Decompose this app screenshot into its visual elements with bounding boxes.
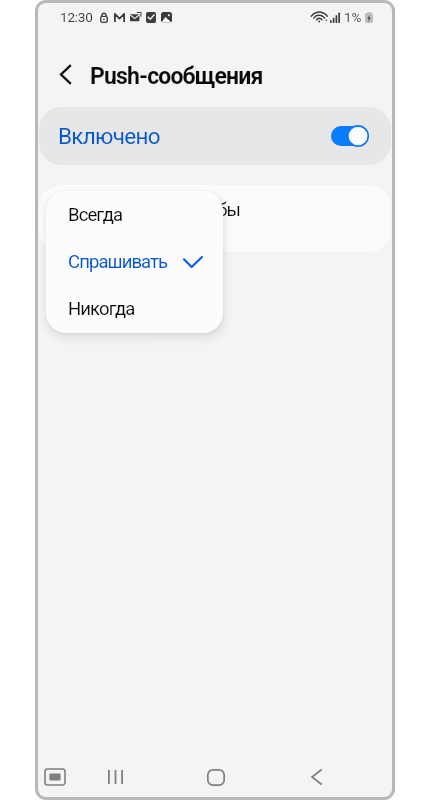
staticText: Push-сообщения <box>90 63 263 90</box>
button[interactable]: Запрашивать, чтобы <box>39 185 391 252</box>
button[interactable]: Никогда <box>46 285 223 332</box>
staticText: Запрашивать, чтобы <box>77 199 241 221</box>
staticText: Никогда <box>68 298 135 320</box>
staticText: 12:30 <box>60 9 93 25</box>
staticText: Спрашивать <box>68 251 168 273</box>
button[interactable]: Всегда <box>46 191 223 238</box>
button[interactable]: Назад <box>45 54 85 94</box>
button[interactable]: Последние приложения <box>85 755 145 797</box>
button[interactable]: Скрыть клавиатуру <box>38 755 77 797</box>
button[interactable]: Назад <box>286 755 346 797</box>
staticText: Включено <box>58 123 160 149</box>
staticText: 1% <box>344 9 362 25</box>
button[interactable]: Спрашивать <box>46 238 223 285</box>
button[interactable]: Главный экран <box>186 755 246 797</box>
staticText: Всегда <box>68 204 123 226</box>
button[interactable]: Включено <box>39 107 391 165</box>
